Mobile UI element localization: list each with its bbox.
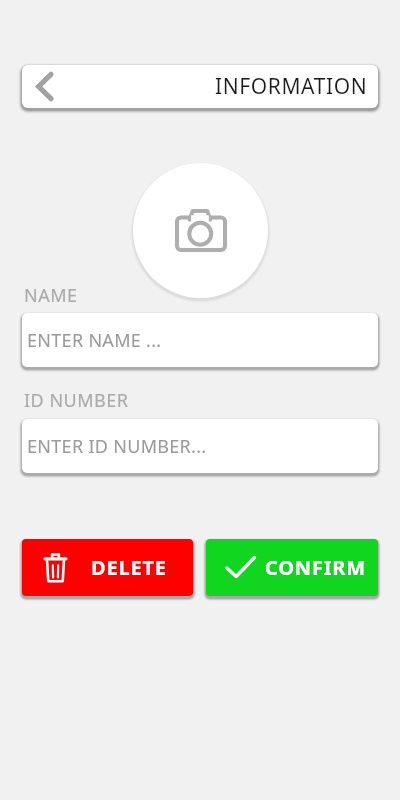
button[interactable]: CONFIRM	[206, 539, 378, 596]
button[interactable]: Add photo	[133, 163, 268, 298]
staticText: DELETE	[91, 554, 167, 581]
button[interactable]: Back	[22, 65, 68, 108]
button[interactable]: ENTER NAME ...	[22, 313, 378, 367]
staticText: ENTER ID NUMBER...	[27, 434, 207, 459]
staticText: INFORMATION	[215, 72, 368, 101]
button[interactable]: Back	[22, 65, 378, 108]
button[interactable]: DELETE	[22, 539, 193, 596]
button[interactable]: ENTER ID NUMBER...	[22, 419, 378, 473]
staticText: ID NUMBER	[24, 388, 129, 413]
staticText: NAME	[24, 283, 78, 308]
staticText: ENTER NAME ...	[27, 328, 162, 353]
staticText: CONFIRM	[265, 554, 366, 581]
